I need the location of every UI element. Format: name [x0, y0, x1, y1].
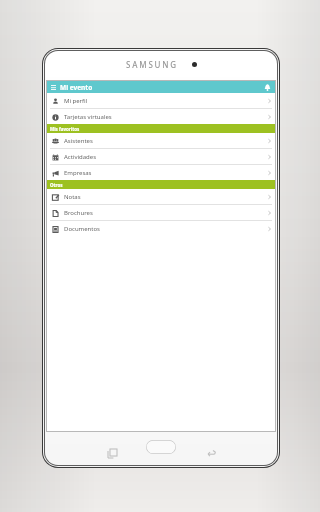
button[interactable]: Recents: [102, 443, 122, 463]
button[interactable]: Tarjetas virtuales: [47, 109, 275, 124]
staticText: Otros: [50, 182, 63, 188]
button[interactable]: Notifications: [262, 82, 272, 92]
button[interactable]: Notas: [47, 189, 275, 204]
button[interactable]: Empresas: [47, 165, 275, 180]
staticText: Mis favoritos: [50, 126, 80, 132]
staticText: Mi evento: [60, 83, 93, 92]
button[interactable]: Documentos: [47, 221, 275, 236]
button[interactable]: Mi perfil: [47, 93, 275, 108]
button[interactable]: Brochures: [47, 205, 275, 220]
staticText: Empresas: [64, 169, 92, 177]
staticText: SAMSUNG: [126, 59, 178, 70]
staticText: Asistentes: [64, 137, 93, 145]
staticText: Notas: [64, 193, 81, 201]
staticText: Mi perfil: [64, 97, 88, 105]
staticText: Tarjetas virtuales: [64, 113, 112, 121]
staticText: Brochures: [64, 209, 93, 217]
staticText: Documentos: [64, 225, 100, 233]
button[interactable]: Actividades: [47, 149, 275, 164]
button[interactable]: Asistentes: [47, 133, 275, 148]
staticText: Actividades: [64, 153, 97, 161]
button[interactable]: Back: [202, 443, 222, 463]
button[interactable]: Menu: [50, 84, 57, 91]
button[interactable]: Home: [146, 440, 176, 454]
